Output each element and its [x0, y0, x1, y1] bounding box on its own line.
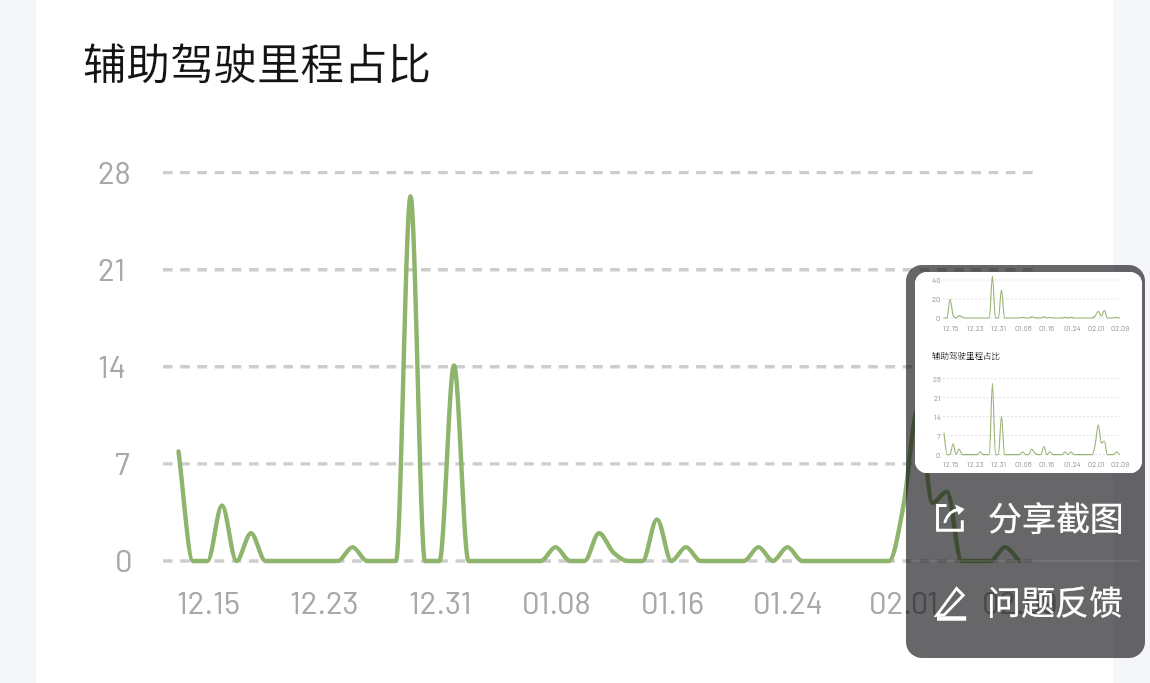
- staticText: 28: [98, 153, 131, 190]
- staticText: 0: [115, 541, 133, 578]
- staticText: 01.16: [1039, 459, 1055, 468]
- staticText: 辅助驾驶里程占比: [83, 30, 431, 93]
- staticText: 分享截图: [988, 492, 1124, 541]
- staticText: 12.15: [177, 583, 240, 620]
- button[interactable]: 分享截图: [906, 473, 1145, 560]
- staticText: 02.01: [1088, 459, 1105, 468]
- staticText: 12.23: [967, 323, 984, 332]
- staticText: 14: [934, 412, 941, 421]
- staticText: 01.08: [522, 583, 591, 620]
- staticText: 0: [936, 313, 941, 322]
- staticText: 12.23: [290, 583, 359, 620]
- button[interactable]: 问题反馈: [906, 561, 1145, 658]
- staticText: 01.16: [641, 583, 704, 620]
- other: 问题反馈: [936, 588, 968, 626]
- staticText: 12.31: [409, 583, 472, 620]
- staticText: 01.24: [753, 583, 823, 620]
- staticText: 20: [932, 294, 941, 303]
- staticText: 12.15: [943, 323, 959, 332]
- staticText: 01.08: [1015, 323, 1032, 332]
- staticText: 02.09: [1111, 323, 1130, 332]
- staticText: 21: [98, 250, 126, 287]
- staticText: 0: [936, 450, 941, 459]
- staticText: 12.15: [943, 459, 959, 468]
- staticText: 02.09: [982, 583, 1058, 620]
- staticText: 02.01: [869, 583, 939, 620]
- staticText: 7: [937, 431, 941, 440]
- staticText: 02.01: [1088, 323, 1105, 332]
- staticText: 问题反馈: [987, 576, 1123, 625]
- staticText: 7: [115, 444, 130, 481]
- staticText: 12.23: [967, 459, 984, 468]
- staticText: 01.08: [1015, 459, 1032, 468]
- staticText: 01.24: [1064, 459, 1081, 468]
- staticText: 辅助驾驶里程占比: [932, 349, 1001, 361]
- staticText: 21: [934, 393, 941, 402]
- staticText: 12.31: [991, 323, 1007, 332]
- staticText: 14: [98, 347, 126, 384]
- staticText: 01.16: [1039, 323, 1055, 332]
- other: 分享截图: [936, 504, 967, 533]
- staticText: 40: [932, 275, 941, 284]
- staticText: 02.09: [1111, 459, 1130, 468]
- staticText: 12.31: [991, 459, 1007, 468]
- staticText: 28: [933, 374, 941, 383]
- staticText: 01.24: [1064, 323, 1081, 332]
